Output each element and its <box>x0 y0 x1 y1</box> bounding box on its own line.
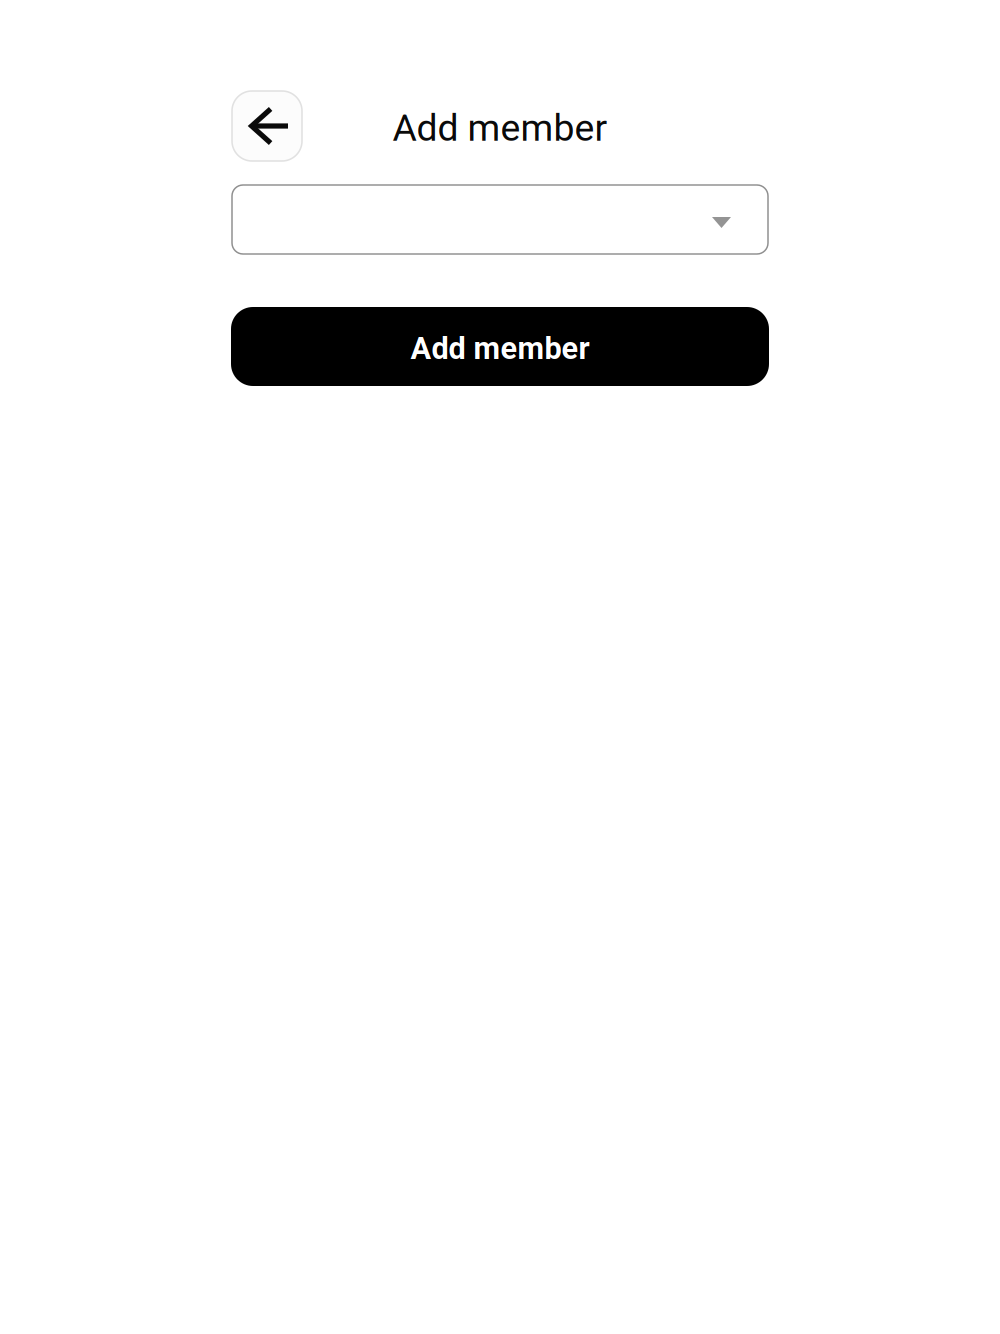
button[interactable]: Back <box>232 91 302 161</box>
button[interactable]: Select member <box>232 185 768 254</box>
button[interactable]: Add member <box>231 307 769 386</box>
staticText: Add member <box>392 106 607 150</box>
staticText: Add member <box>410 330 589 366</box>
